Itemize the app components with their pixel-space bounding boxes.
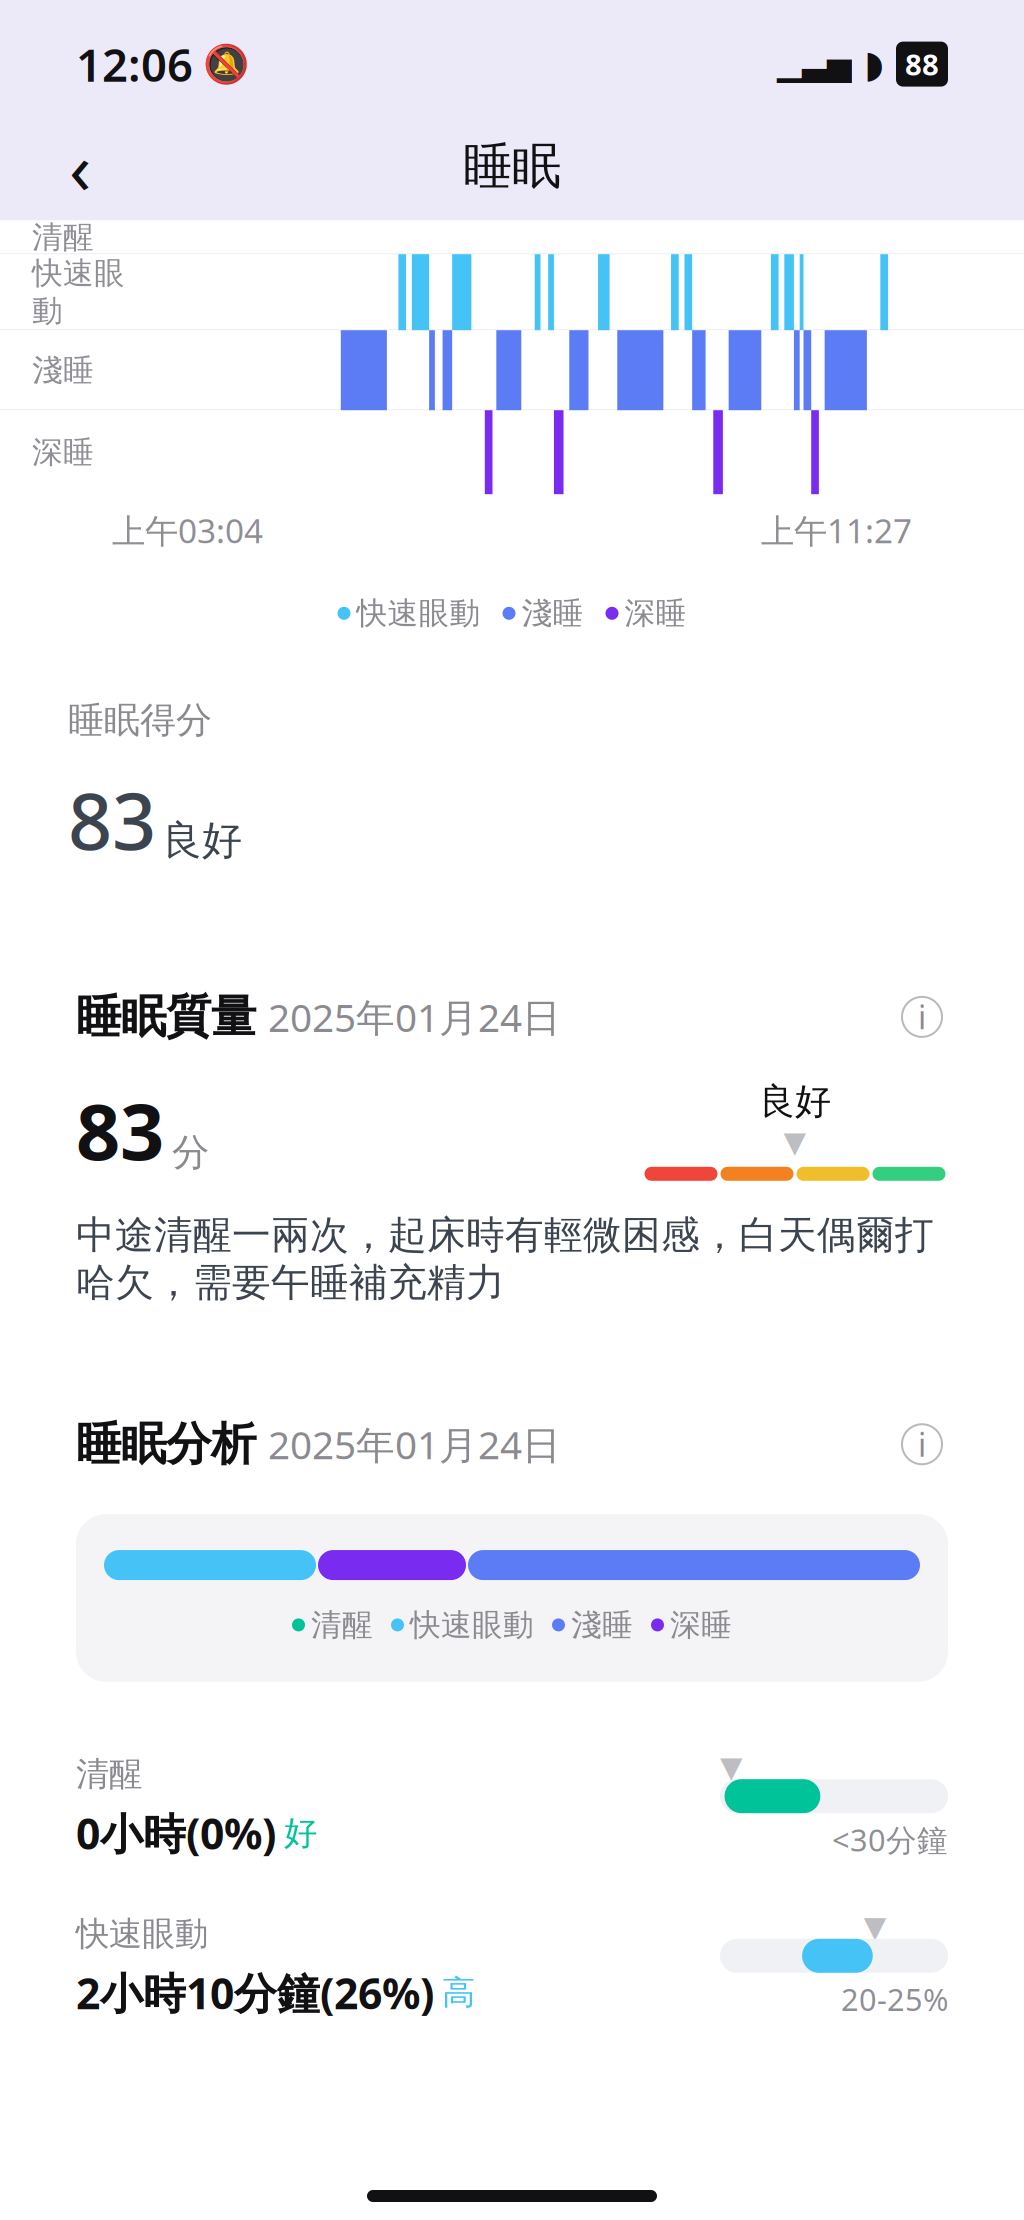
staticText: ◗ (864, 43, 884, 85)
staticText: 深睡 (32, 433, 94, 471)
staticText: 快速眼 (32, 254, 125, 292)
staticText: 12:06 (76, 34, 193, 94)
staticText: 2025年01月24日 (268, 1419, 561, 1470)
staticText: 0小時(0%) (76, 1805, 276, 1861)
staticText: 清醒 (76, 1754, 142, 1795)
button[interactable]: Information (896, 1418, 948, 1470)
staticText: 快速眼動 (356, 594, 480, 632)
staticText: 20-25% (841, 1979, 948, 2019)
staticText: 83 (68, 768, 156, 871)
staticText: 2025年01月24日 (268, 991, 561, 1042)
staticText: 🔕 (203, 43, 249, 85)
staticText: 高 (442, 1972, 475, 2013)
staticText: 分 (172, 1130, 209, 1175)
staticText: 88 (905, 45, 939, 84)
staticText: 好 (284, 1813, 317, 1853)
staticText: 清醒 (311, 1606, 373, 1644)
button[interactable]: Back (48, 134, 112, 198)
staticText: i (918, 1423, 926, 1465)
staticText: 睡眠質量 (76, 989, 256, 1045)
staticText: 中途清醒一兩次，起床時有輕微困感，白天偶爾打哈欠，需要午睡補充精力 (76, 1211, 934, 1306)
staticText: 上午03:04 (112, 508, 263, 552)
staticText: 2小時10分鐘(26%) (76, 1964, 434, 2021)
staticText: ▼ (864, 1910, 887, 1943)
staticText: ‹ (69, 118, 91, 214)
staticText: 上午11:27 (761, 508, 912, 552)
staticText: ▼ (783, 1125, 806, 1159)
staticText: 良好 (162, 816, 242, 865)
staticText: i (918, 996, 926, 1038)
staticText: ▼ (720, 1751, 743, 1784)
staticText: 睡眠 (463, 136, 561, 196)
staticText: 83 (76, 1079, 164, 1181)
staticText: 深睡 (670, 1606, 732, 1644)
staticText: 睡眠分析 (76, 1416, 256, 1472)
staticText: 淺睡 (32, 351, 94, 389)
staticText: 淺睡 (521, 594, 583, 632)
staticText: 快速眼動 (410, 1606, 534, 1644)
button[interactable]: Information (896, 991, 948, 1043)
staticText: 淺睡 (571, 1606, 633, 1644)
staticText: 快速眼動 (76, 1913, 208, 1954)
staticText: ▁▃▅ (777, 46, 852, 82)
staticText: 清醒 (32, 218, 94, 256)
staticText: <30分鐘 (832, 1819, 948, 1860)
staticText: 深睡 (624, 594, 686, 632)
staticText: 良好 (759, 1079, 831, 1123)
staticText: 動 (32, 292, 63, 330)
staticText: 睡眠得分 (68, 698, 212, 742)
